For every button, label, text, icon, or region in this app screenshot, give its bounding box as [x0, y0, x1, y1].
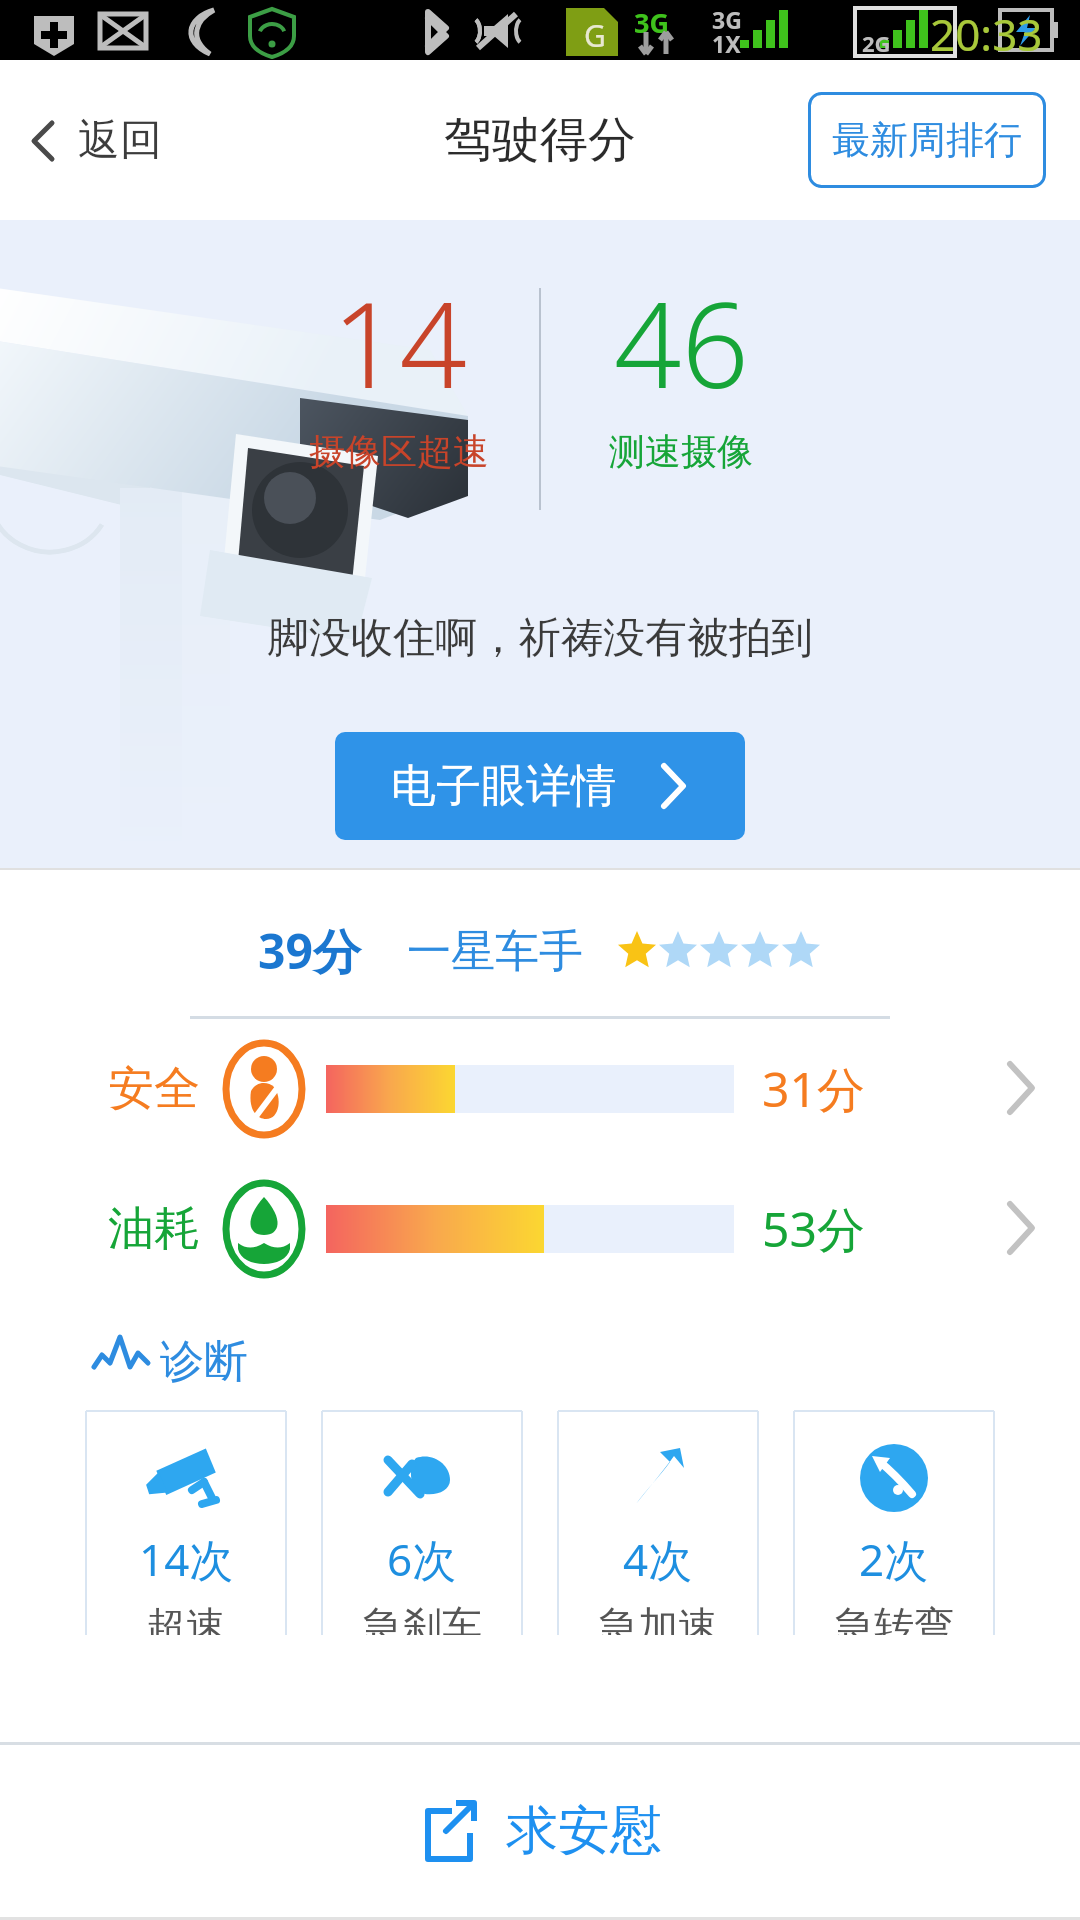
- button[interactable]: 14次: [86, 1411, 286, 1635]
- button[interactable]: 2次: [794, 1411, 994, 1635]
- button[interactable]: 46: [541, 262, 821, 474]
- staticText: 2G: [862, 28, 891, 58]
- button[interactable]: 诊断: [92, 1333, 248, 1389]
- staticText: 39分: [258, 918, 361, 984]
- staticText: 电子眼详情: [391, 758, 616, 815]
- staticText: 1X: [712, 28, 741, 59]
- staticText: 超速: [146, 1601, 226, 1635]
- button[interactable]: 油耗: [0, 1159, 1080, 1299]
- button[interactable]: 6次: [322, 1411, 522, 1635]
- staticText: 安全: [108, 1060, 200, 1118]
- staticText: 急加速: [598, 1601, 718, 1635]
- staticText: 急刹车: [362, 1601, 482, 1635]
- staticText: 31分: [762, 1056, 865, 1122]
- button[interactable]: 14: [259, 262, 539, 474]
- staticText: 3G: [712, 4, 742, 35]
- button[interactable]: 返回: [18, 102, 172, 179]
- staticText: 急转弯: [834, 1601, 954, 1635]
- staticText: 一星车手: [407, 924, 583, 979]
- staticText: 2次: [859, 1529, 929, 1589]
- staticText: 返回: [78, 114, 162, 167]
- staticText: 测速摄像: [609, 429, 753, 474]
- staticText: 求安慰: [506, 1798, 662, 1864]
- button[interactable]: 最新周排行: [808, 92, 1046, 188]
- staticText: G: [584, 15, 606, 56]
- staticText: 摄像区超速: [309, 429, 489, 474]
- staticText: 46: [614, 262, 749, 423]
- staticText: 诊断: [160, 1334, 248, 1389]
- staticText: 14次: [139, 1529, 234, 1589]
- staticText: 6次: [387, 1529, 457, 1589]
- staticText: 53分: [762, 1196, 865, 1262]
- button[interactable]: 4次: [558, 1411, 758, 1635]
- staticText: 油耗: [108, 1200, 200, 1258]
- staticText: 20:33: [930, 4, 1043, 64]
- staticText: 14: [332, 262, 467, 423]
- staticText: 最新周排行: [832, 116, 1022, 164]
- staticText: 脚没收住啊，祈祷没有被拍到: [267, 612, 813, 665]
- staticText: 驾驶得分: [444, 110, 636, 170]
- button[interactable]: 安全: [0, 1019, 1080, 1159]
- staticText: 4次: [623, 1529, 693, 1589]
- button[interactable]: 电子眼详情: [335, 732, 745, 840]
- button[interactable]: 求安慰: [0, 1745, 1080, 1917]
- staticText: 3G: [634, 4, 669, 41]
